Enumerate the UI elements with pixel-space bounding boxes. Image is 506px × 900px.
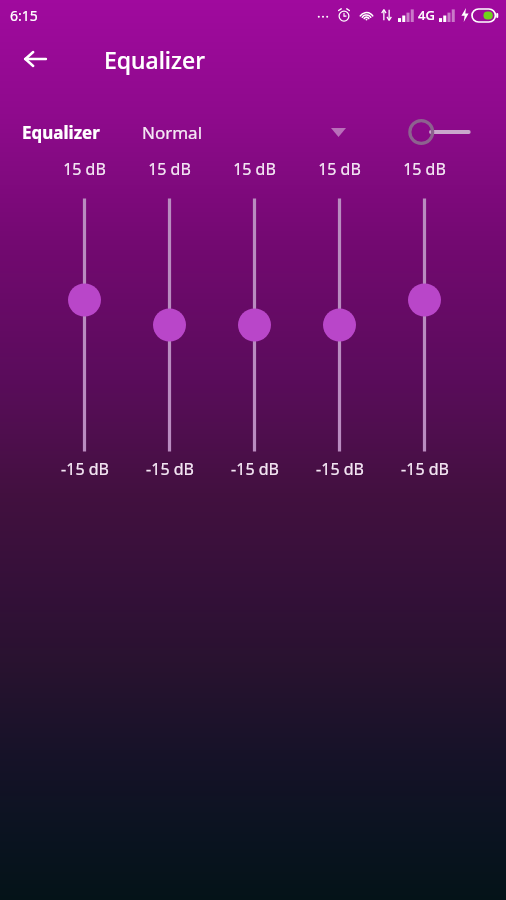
staticText: -15 dB xyxy=(316,458,364,480)
staticText: Equalizer xyxy=(22,121,100,144)
button[interactable]: Band 2 level xyxy=(127,200,212,450)
staticText: 15 dB xyxy=(318,158,361,180)
button[interactable]: Band 3 level xyxy=(212,200,297,450)
staticText: -15 dB xyxy=(401,458,449,480)
button[interactable]: Band 1 level xyxy=(42,200,127,450)
staticText: 4G xyxy=(418,6,435,24)
staticText: -15 dB xyxy=(146,458,194,480)
button[interactable]: Band 4 level xyxy=(297,200,382,450)
staticText: -15 dB xyxy=(61,458,109,480)
staticText: 15 dB xyxy=(403,158,446,180)
staticText: Equalizer xyxy=(104,44,205,75)
button[interactable]: Back xyxy=(12,36,58,82)
staticText: -15 dB xyxy=(231,458,279,480)
staticText: 6:15 xyxy=(10,6,38,25)
button[interactable]: Equalizer on off switch xyxy=(408,113,470,151)
staticText: Normal xyxy=(142,121,203,144)
staticText: 15 dB xyxy=(233,158,276,180)
staticText: 15 dB xyxy=(148,158,191,180)
button[interactable]: Band 5 level xyxy=(382,200,467,450)
button[interactable]: Normal xyxy=(142,112,350,152)
staticText: 15 dB xyxy=(63,158,106,180)
